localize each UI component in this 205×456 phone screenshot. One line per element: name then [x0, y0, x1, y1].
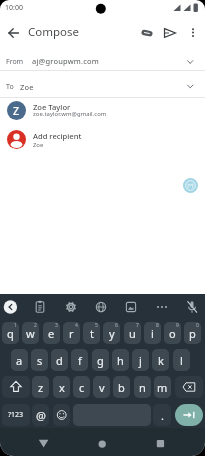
button[interactable] [64, 299, 78, 315]
staticText: Zoe [20, 82, 34, 92]
staticText: z [38, 380, 44, 395]
button[interactable]: b [113, 376, 130, 398]
button[interactable]: p [184, 322, 201, 344]
staticText: g [97, 353, 104, 368]
button[interactable] [175, 376, 203, 398]
button[interactable]: t [83, 322, 100, 344]
button[interactable] [33, 299, 47, 315]
button[interactable] [175, 404, 203, 426]
button[interactable] [183, 178, 198, 193]
staticText: w [26, 326, 35, 341]
button[interactable] [137, 25, 155, 41]
button[interactable]: To [0, 70, 205, 97]
button[interactable] [146, 428, 174, 456]
button[interactable]: From [0, 47, 205, 70]
staticText: 10:00 [5, 3, 23, 13]
staticText: . [161, 408, 164, 423]
button[interactable]: c [73, 376, 90, 398]
button[interactable] [53, 404, 70, 426]
staticText: t [90, 326, 94, 341]
staticText: e [48, 326, 55, 341]
button[interactable] [2, 376, 30, 398]
staticText: 7 [136, 322, 139, 329]
button[interactable]: r [63, 322, 80, 344]
staticText: p [189, 326, 196, 341]
staticText: @ [36, 408, 46, 423]
staticText: 4 [75, 322, 78, 329]
button[interactable] [186, 25, 200, 41]
staticText: 3 [55, 322, 58, 329]
staticText: h [117, 353, 124, 368]
staticText: d [56, 353, 63, 368]
staticText: Compose [28, 24, 80, 40]
staticText: j [139, 353, 142, 368]
button[interactable] [2, 24, 24, 42]
button[interactable]: Z [0, 98, 205, 125]
button[interactable]: @ [32, 404, 49, 426]
button[interactable]: y [103, 322, 120, 344]
button[interactable] [2, 404, 30, 426]
button[interactable]: Add recipient [0, 127, 205, 154]
staticText: Zoe [33, 141, 44, 149]
button[interactable] [88, 428, 116, 456]
button[interactable] [155, 299, 169, 315]
staticText: m [157, 380, 168, 395]
button[interactable]: k [152, 349, 169, 371]
button[interactable]: u [124, 322, 141, 344]
staticText: k [158, 353, 164, 368]
staticText: f [78, 353, 82, 368]
staticText: y [109, 326, 115, 341]
staticText: s [37, 353, 43, 368]
staticText: x [59, 380, 65, 395]
staticText: From [6, 57, 24, 67]
button[interactable]: l [173, 349, 190, 371]
staticText: Z [13, 104, 20, 118]
staticText: 1 [14, 322, 17, 329]
button[interactable]: m [154, 376, 171, 398]
button[interactable]: j [132, 349, 149, 371]
button[interactable] [185, 299, 199, 315]
staticText: o [169, 326, 176, 341]
button[interactable]: q [2, 322, 19, 344]
button[interactable]: w [22, 322, 39, 344]
button[interactable]: d [51, 349, 68, 371]
staticText: a [16, 353, 23, 368]
staticText: Zoe Taylor [33, 102, 71, 112]
staticText: n [139, 380, 146, 395]
staticText: 6 [115, 322, 118, 329]
button[interactable] [3, 299, 18, 314]
staticText: Add recipient [33, 131, 82, 141]
button[interactable]: s [31, 349, 48, 371]
staticText: 9 [176, 322, 179, 329]
button[interactable]: v [93, 376, 110, 398]
button[interactable]: x [53, 376, 70, 398]
button[interactable] [124, 299, 138, 315]
staticText: 0 [196, 322, 199, 329]
staticText: i [151, 326, 154, 341]
button[interactable]: i [144, 322, 161, 344]
button[interactable] [94, 299, 108, 315]
button[interactable]: e [43, 322, 60, 344]
button[interactable]: g [92, 349, 109, 371]
button[interactable]: z [32, 376, 49, 398]
staticText: 2 [34, 322, 37, 329]
staticText: v [99, 380, 105, 395]
staticText: 8 [156, 322, 159, 329]
staticText: r [69, 326, 74, 341]
staticText: c [79, 380, 85, 395]
staticText: u [129, 326, 136, 341]
button[interactable]: o [164, 322, 181, 344]
button[interactable]: n [134, 376, 151, 398]
button[interactable]: h [112, 349, 129, 371]
button[interactable] [30, 428, 58, 456]
staticText: To [6, 82, 14, 92]
button[interactable]: a [11, 349, 28, 371]
staticText: b [118, 380, 125, 395]
button[interactable]: . [153, 404, 171, 426]
staticText: zoe.taylor.wm@gmail.com [33, 110, 107, 118]
button[interactable]: f [71, 349, 88, 371]
button[interactable] [160, 25, 180, 41]
staticText: ?123 [8, 410, 24, 420]
staticText: aj@groupwm.com [32, 56, 99, 66]
